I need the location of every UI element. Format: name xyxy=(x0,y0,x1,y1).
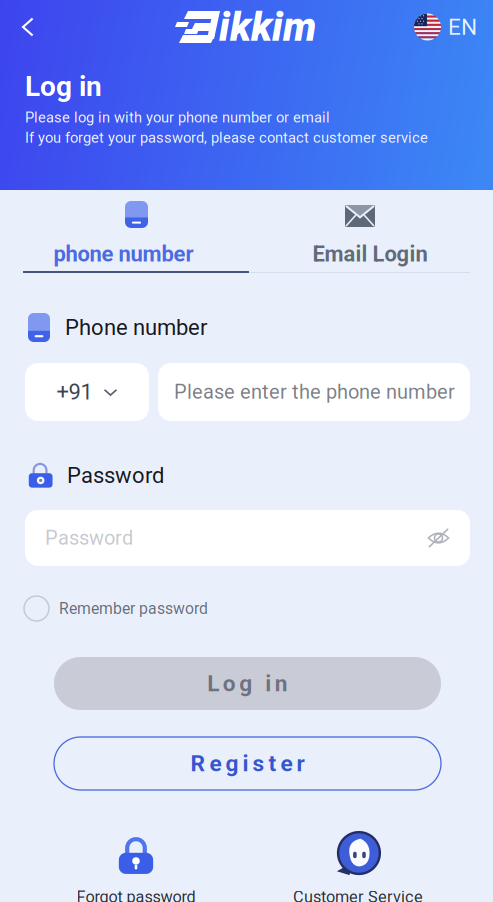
staticText: Register xyxy=(190,750,304,777)
button[interactable]: Log in xyxy=(54,657,441,710)
button[interactable]: Language English xyxy=(410,5,481,49)
staticText: Email Login xyxy=(312,241,427,267)
staticText: Customer Service xyxy=(293,887,423,902)
staticText: Password xyxy=(67,463,164,488)
staticText: Phone number xyxy=(65,315,207,340)
staticText: ikkim xyxy=(219,4,316,50)
button[interactable]: Password xyxy=(25,510,470,566)
staticText: Please log in with your phone number or … xyxy=(25,109,330,126)
staticText: Log in xyxy=(207,670,288,697)
staticText: Forgot password xyxy=(76,887,195,902)
button[interactable]: Customer Service xyxy=(223,830,493,902)
button[interactable]: +91 xyxy=(25,363,149,421)
button[interactable]: Forgot password xyxy=(0,830,272,902)
staticText: EN xyxy=(448,14,477,40)
button[interactable]: Register xyxy=(54,737,441,790)
staticText: Please enter the phone number xyxy=(174,380,455,404)
button[interactable]: Back xyxy=(6,5,52,49)
button[interactable]: Email Login xyxy=(247,190,493,275)
staticText: Log in xyxy=(25,70,102,103)
staticText: Password xyxy=(45,526,133,550)
staticText: phone number xyxy=(53,241,193,267)
button[interactable]: phone number xyxy=(0,190,247,275)
staticText: +91 xyxy=(56,379,92,405)
button[interactable]: Remember password xyxy=(24,592,208,625)
button[interactable]: Please enter the phone number xyxy=(158,363,470,421)
staticText: Remember password xyxy=(59,599,208,618)
staticText: If you forget your password, please cont… xyxy=(25,129,428,146)
